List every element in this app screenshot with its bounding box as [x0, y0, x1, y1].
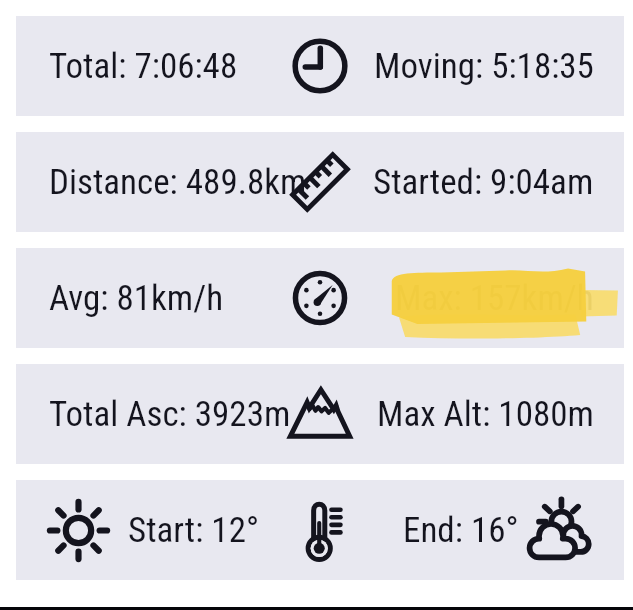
- staticText: Started: 9:04am: [373, 162, 594, 203]
- staticText: Max: 157km/h: [395, 278, 594, 319]
- other: Temperature: [305, 500, 341, 560]
- other: Sunny: [46, 498, 111, 563]
- other: Distance: [290, 152, 350, 212]
- staticText: Start: 12°: [128, 510, 259, 551]
- button[interactable]: Distance: 489.8km: [16, 132, 624, 232]
- staticText: Total Asc: 3923m: [49, 394, 291, 435]
- other: Partly cloudy: [526, 498, 591, 563]
- button[interactable]: Total: 7:06:48: [16, 16, 624, 116]
- button[interactable]: Avg: 81km/h: [16, 248, 624, 348]
- other: Speed: [290, 268, 350, 328]
- staticText: Avg: 81km/h: [49, 278, 224, 319]
- staticText: End: 16°: [403, 510, 519, 551]
- other: Elevation: [290, 384, 350, 444]
- other: Duration: [290, 36, 350, 96]
- staticText: Total: 7:06:48: [49, 46, 238, 87]
- staticText: Distance: 489.8km: [49, 162, 307, 203]
- button[interactable]: Total Asc: 3923m: [16, 364, 624, 464]
- button[interactable]: Sunny: [16, 480, 624, 580]
- staticText: Moving: 5:18:35: [374, 46, 594, 87]
- staticText: Max Alt: 1080m: [377, 394, 594, 435]
